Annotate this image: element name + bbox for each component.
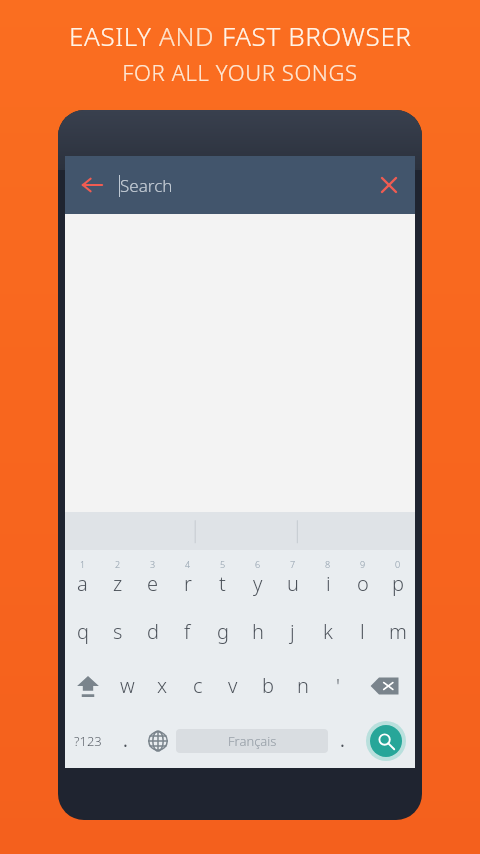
staticText: t — [219, 570, 226, 597]
staticText: b — [262, 672, 274, 699]
button[interactable]: v — [215, 658, 250, 713]
staticText: j — [290, 618, 295, 645]
staticText: p — [392, 570, 404, 597]
staticText: FOR ALL YOUR SONGS — [122, 57, 358, 87]
button[interactable]: Backspace — [355, 658, 415, 713]
button[interactable]: ' — [320, 658, 355, 713]
button[interactable]: q — [65, 604, 100, 658]
staticText: 3 — [150, 558, 156, 570]
staticText: 9 — [360, 558, 366, 570]
staticText: Français — [228, 732, 277, 750]
staticText: AND — [159, 18, 222, 53]
button[interactable]: . — [328, 713, 357, 768]
button[interactable]: 3 — [135, 550, 170, 604]
staticText: c — [193, 672, 203, 699]
staticText: m — [389, 618, 407, 645]
staticText: g — [217, 618, 229, 645]
button[interactable]: h — [240, 604, 275, 658]
staticText: 8 — [325, 558, 331, 570]
staticText: a — [77, 570, 88, 597]
staticText: 4 — [185, 558, 191, 570]
staticText: w — [120, 672, 135, 699]
staticText: x — [157, 672, 168, 699]
button[interactable]: j — [275, 604, 310, 658]
staticText: ?123 — [74, 732, 102, 750]
staticText: i — [326, 570, 331, 597]
button[interactable]: f — [170, 604, 205, 658]
button[interactable]: Back — [65, 156, 119, 214]
button[interactable]: Français — [176, 729, 328, 753]
staticText: o — [357, 570, 369, 597]
staticText: . — [340, 728, 345, 753]
button[interactable]: 2 — [100, 550, 135, 604]
button[interactable]: 1 — [65, 550, 100, 604]
staticText: z — [113, 570, 123, 597]
button[interactable]: s — [100, 604, 135, 658]
button[interactable]: . — [111, 713, 140, 768]
staticText: s — [113, 618, 123, 645]
button[interactable]: g — [205, 604, 240, 658]
staticText: h — [252, 618, 264, 645]
button[interactable]: 6 — [240, 550, 275, 604]
staticText: n — [297, 672, 309, 699]
button[interactable]: Clear — [363, 156, 415, 214]
button[interactable]: w — [110, 658, 145, 713]
staticText: u — [287, 570, 299, 597]
staticText: y — [253, 570, 263, 597]
staticText: l — [360, 618, 365, 645]
button[interactable]: Change language — [140, 713, 176, 768]
button[interactable]: 0 — [380, 550, 415, 604]
staticText: 7 — [290, 558, 296, 570]
button[interactable]: m — [380, 604, 415, 658]
button[interactable]: 8 — [310, 550, 345, 604]
button[interactable]: l — [345, 604, 380, 658]
button[interactable]: 4 — [170, 550, 205, 604]
staticText: 2 — [115, 558, 121, 570]
staticText: FAST BROWSER — [222, 18, 412, 53]
staticText: e — [147, 570, 159, 597]
button[interactable]: n — [285, 658, 320, 713]
button[interactable]: 5 — [205, 550, 240, 604]
staticText: . — [123, 728, 128, 753]
staticText: v — [228, 672, 238, 699]
button[interactable]: ?123 — [65, 713, 111, 768]
button[interactable]: d — [135, 604, 170, 658]
staticText: f — [184, 618, 191, 645]
button[interactable]: b — [250, 658, 285, 713]
button[interactable]: Shift — [65, 658, 110, 713]
button[interactable]: k — [310, 604, 345, 658]
staticText: q — [77, 618, 89, 645]
staticText: 1 — [80, 558, 86, 570]
staticText: 0 — [395, 558, 401, 570]
button[interactable]: x — [145, 658, 180, 713]
staticText: ' — [336, 672, 340, 699]
button[interactable]: 9 — [345, 550, 380, 604]
staticText: d — [147, 618, 159, 645]
button[interactable]: Search — [357, 713, 415, 768]
staticText: r — [184, 570, 192, 597]
button[interactable]: 7 — [275, 550, 310, 604]
button[interactable]: Search — [119, 156, 363, 214]
staticText: 6 — [255, 558, 261, 570]
button[interactable]: c — [180, 658, 215, 713]
staticText: EASILY — [69, 18, 159, 53]
staticText: Search — [120, 174, 173, 197]
staticText: 5 — [220, 558, 226, 570]
staticText: k — [323, 618, 333, 645]
